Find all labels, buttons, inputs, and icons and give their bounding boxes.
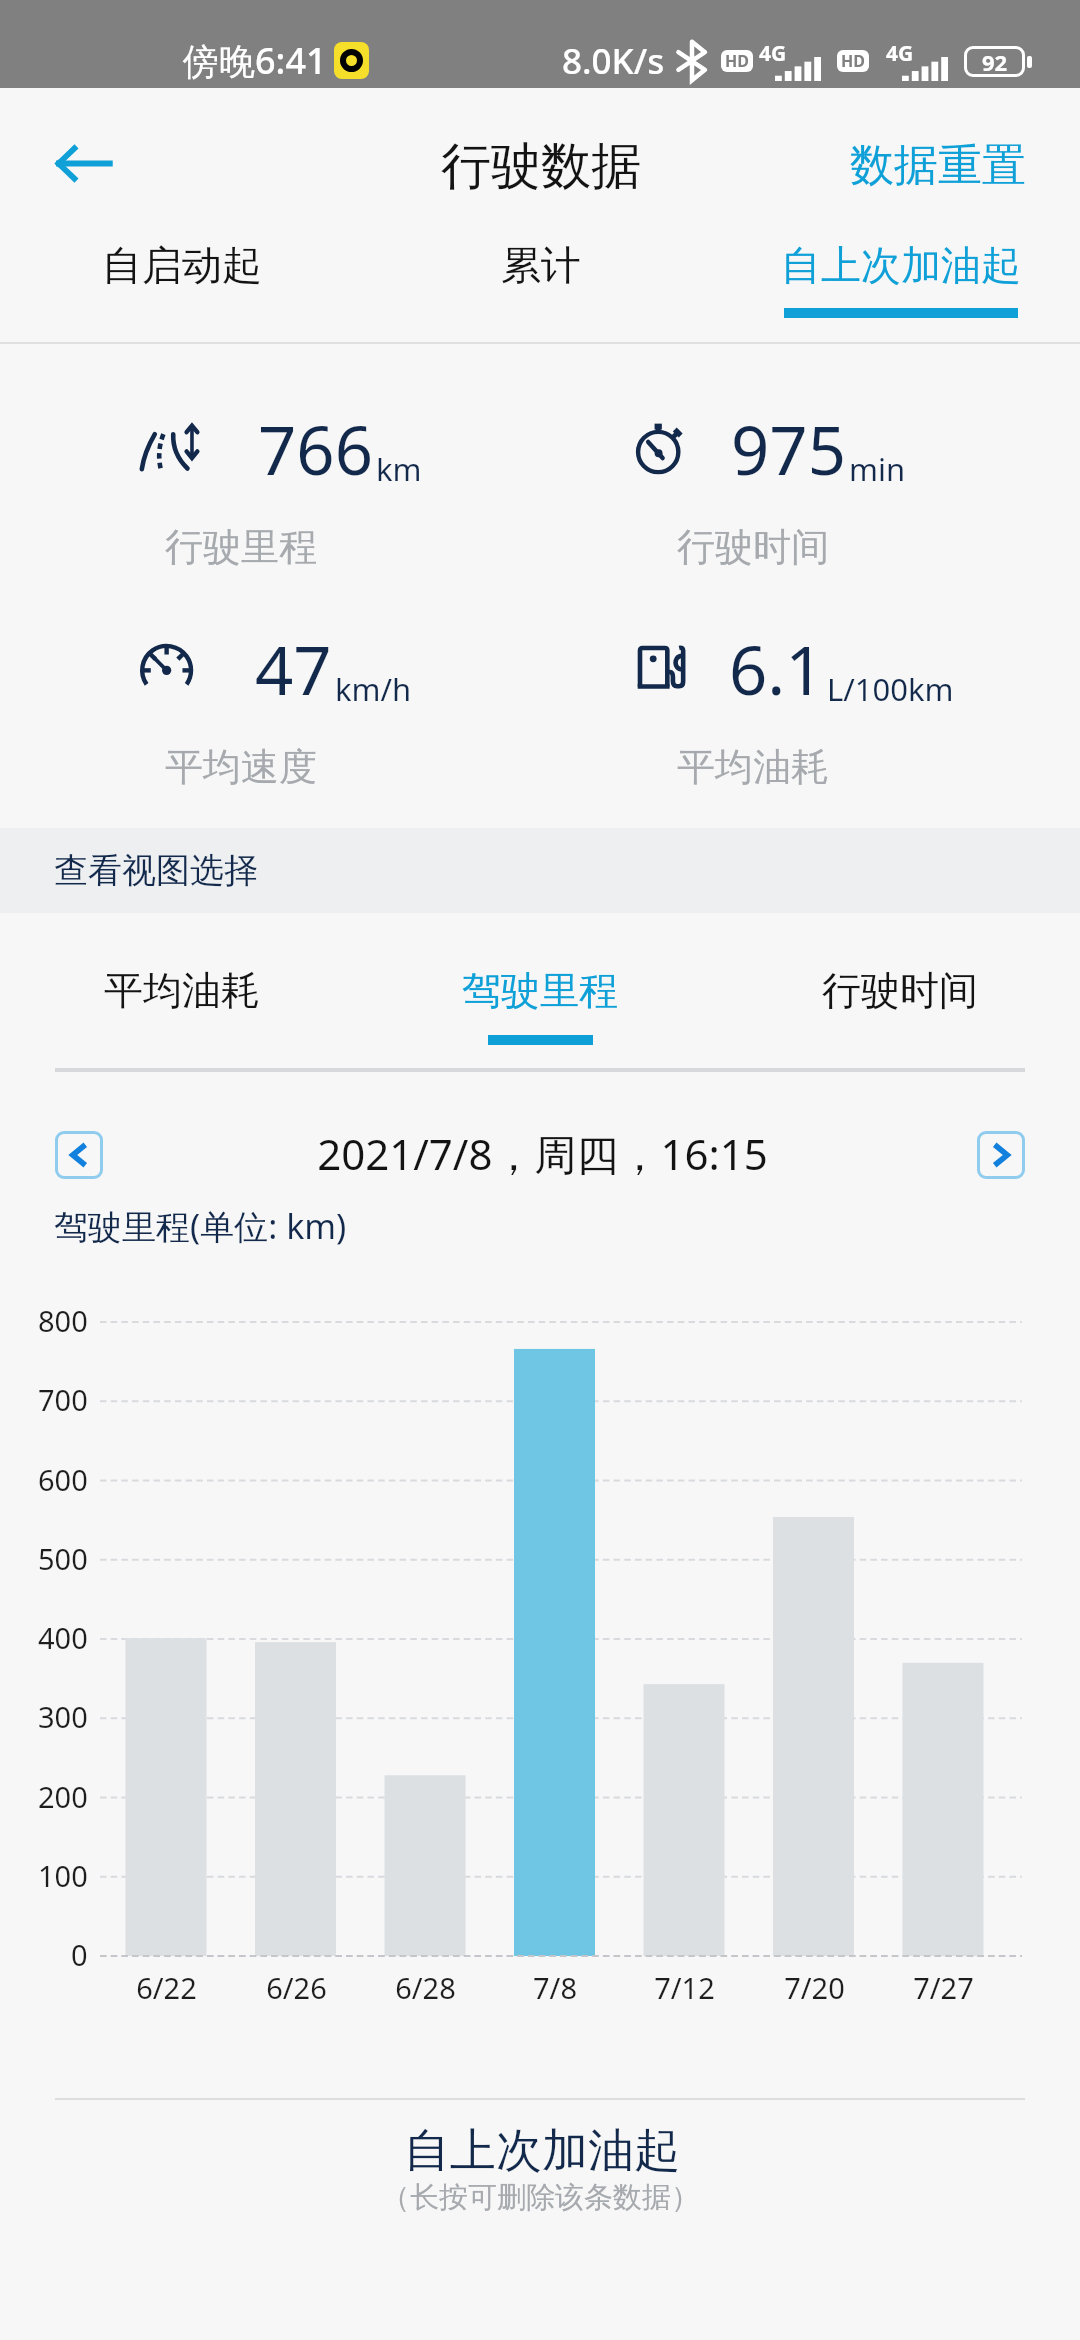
staticText: 6/22 [136, 1968, 197, 2007]
staticText: 975 [731, 403, 846, 494]
staticText: 4G [886, 39, 914, 68]
staticText: 8.0K/s [562, 37, 665, 85]
staticText: 766 [258, 403, 373, 494]
staticText: 6/28 [395, 1968, 456, 2007]
staticText: 2021/7/8，周四，16:15 [317, 1125, 768, 1182]
staticText: 100 [38, 1856, 88, 1895]
staticText: km [376, 448, 422, 490]
button[interactable]: 驾驶里程 [360, 935, 720, 1065]
staticText: 6.1 [729, 623, 824, 714]
staticText: 驾驶里程(单位: km) [54, 1203, 347, 1249]
staticText: 200 [38, 1777, 88, 1816]
button[interactable]: 上一条 [55, 1131, 103, 1179]
staticText: 700 [38, 1380, 88, 1419]
staticText: HD [841, 50, 865, 72]
staticText: 800 [38, 1301, 88, 1340]
staticText: 行驶时间 [677, 523, 829, 571]
staticText: 500 [38, 1539, 88, 1578]
button[interactable]: 自上次加油起 [721, 210, 1080, 340]
staticText: （长按可删除该条数据） [381, 2179, 700, 2216]
staticText: 平均油耗 [104, 966, 260, 1015]
staticText: 7/27 [913, 1968, 974, 2007]
button[interactable]: 数据重置 [806, 123, 1026, 207]
staticText: 行驶数据 [441, 135, 641, 198]
staticText: 300 [38, 1697, 88, 1736]
button[interactable]: 平均油耗 [2, 935, 362, 1065]
staticText: 累计 [501, 240, 581, 290]
staticText: 4G [759, 39, 787, 68]
staticText: 7/12 [654, 1968, 715, 2007]
staticText: 自上次加油起 [781, 240, 1021, 290]
staticText: L/100km [827, 668, 954, 710]
staticText: 行驶里程 [165, 523, 317, 571]
button[interactable]: 自启动起 [2, 210, 362, 340]
staticText: 平均速度 [165, 743, 317, 791]
staticText: 7/8 [533, 1968, 577, 2007]
staticText: 600 [38, 1460, 88, 1499]
staticText: min [849, 448, 906, 490]
staticText: 行驶时间 [822, 966, 978, 1015]
staticText: 数据重置 [850, 138, 1026, 193]
button[interactable]: 累计 [361, 210, 721, 340]
staticText: 查看视图选择 [54, 849, 258, 892]
staticText: km/h [335, 668, 412, 710]
staticText: 平均油耗 [677, 743, 829, 791]
staticText: HD [725, 50, 749, 72]
staticText: 6/26 [266, 1968, 327, 2007]
button[interactable]: 下一条 [977, 1131, 1025, 1179]
staticText: 47 [255, 623, 332, 714]
staticText: 自上次加油起 [404, 2122, 680, 2180]
button[interactable]: 返回 [41, 121, 125, 205]
staticText: 傍晚6:41 [183, 36, 327, 85]
staticText: 400 [38, 1618, 88, 1657]
staticText: 0 [71, 1935, 88, 1974]
staticText: 驾驶里程 [462, 966, 618, 1015]
staticText: 自启动起 [102, 240, 262, 290]
staticText: 92 [982, 47, 1008, 77]
button[interactable]: 行驶时间 [720, 935, 1080, 1065]
staticText: 7/20 [784, 1968, 845, 2007]
